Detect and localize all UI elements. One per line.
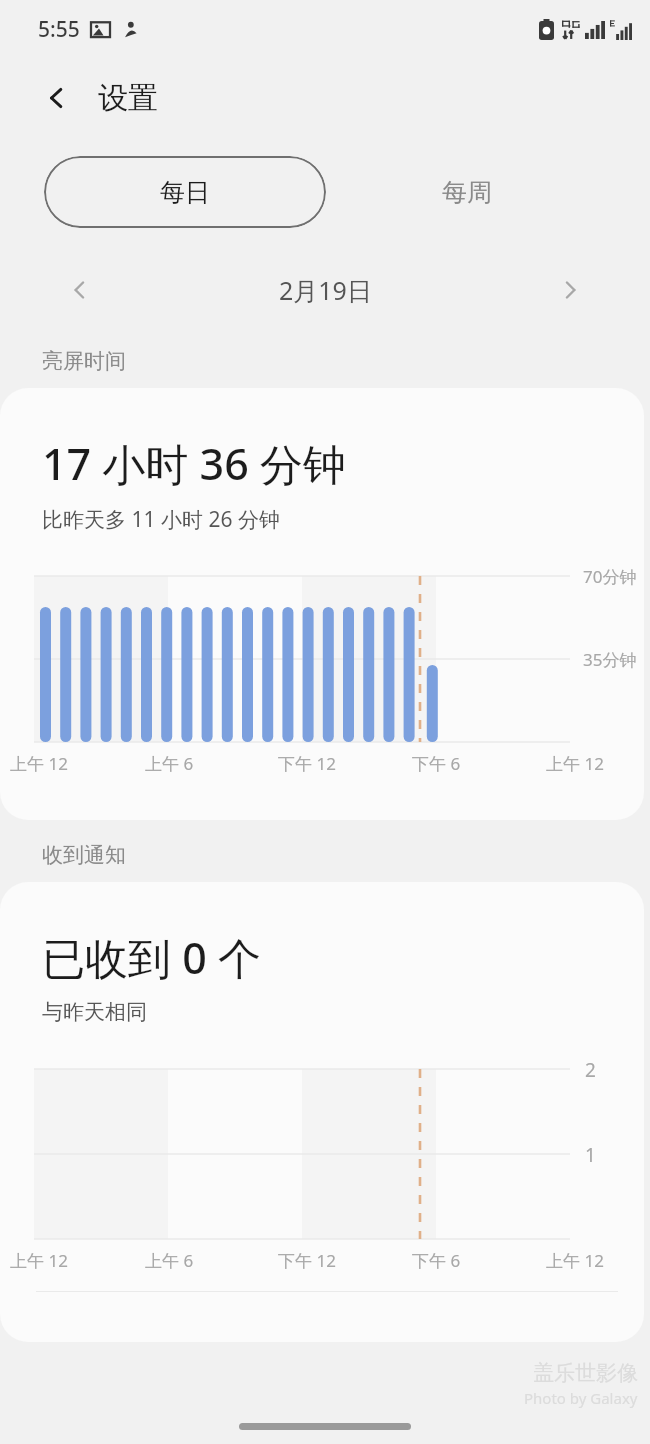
staticText: 35分钟 — [583, 648, 637, 671]
staticText: 上午 12 — [10, 1249, 68, 1272]
staticText: 70分钟 — [583, 565, 637, 588]
staticText: 每日 — [160, 177, 210, 208]
staticText: 收到通知 — [42, 842, 126, 868]
button[interactable]: 每周 — [326, 156, 608, 228]
staticText: 2 — [585, 1057, 596, 1083]
staticText: 已收到 0 个 — [42, 928, 261, 987]
staticText: 5:55 — [38, 15, 80, 44]
staticText: 上午 12 — [10, 752, 68, 775]
staticText: Photo by Galaxy — [524, 1388, 638, 1408]
staticText: 下午 12 — [278, 1249, 336, 1272]
staticText: 1 — [585, 1142, 596, 1168]
staticText: 下午 6 — [412, 752, 461, 775]
staticText: 设置 — [98, 79, 158, 117]
staticText: 与昨天相同 — [42, 999, 147, 1025]
staticText: 亮屏时间 — [42, 348, 126, 374]
staticText: 2月19日 — [279, 273, 372, 307]
button[interactable]: 后一天 — [546, 266, 594, 314]
staticText: 上午 12 — [546, 752, 604, 775]
staticText: 上午 6 — [145, 752, 194, 775]
staticText: 下午 12 — [278, 752, 336, 775]
staticText: 上午 12 — [546, 1249, 604, 1272]
button[interactable]: 前一天 — [56, 266, 104, 314]
button[interactable]: 返回 — [34, 75, 80, 121]
button[interactable]: 17 小时 36 分钟 — [0, 388, 644, 820]
staticText: 每周 — [442, 177, 492, 208]
button[interactable]: 每日 — [44, 156, 326, 228]
staticText: 比昨天多 11 小时 26 分钟 — [42, 505, 280, 534]
staticText: 盖乐世影像 — [533, 1360, 638, 1386]
staticText: 下午 6 — [412, 1249, 461, 1272]
staticText: 上午 6 — [145, 1249, 194, 1272]
staticText: 17 小时 36 分钟 — [42, 434, 346, 493]
button[interactable]: 已收到 0 个 — [0, 882, 644, 1342]
